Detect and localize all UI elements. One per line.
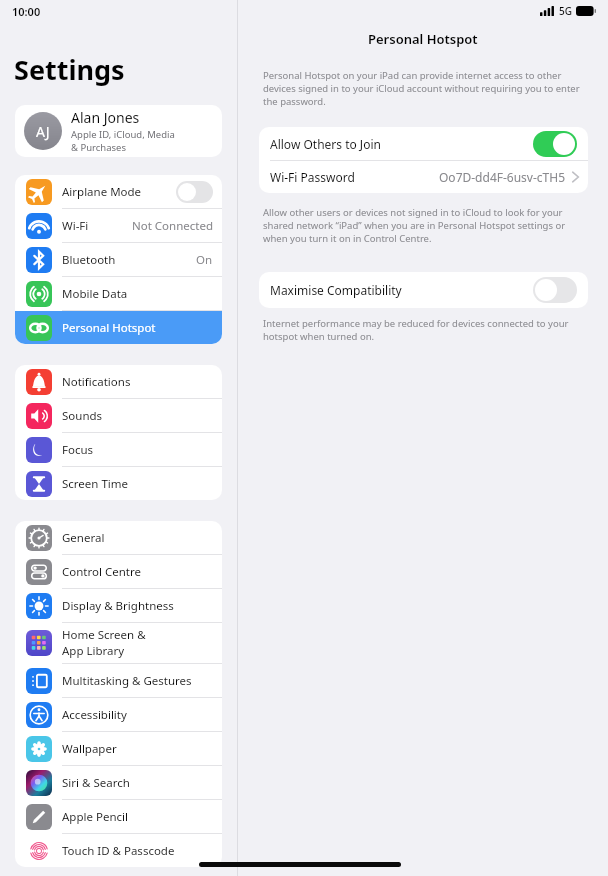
staticText: Sounds <box>62 408 103 424</box>
staticText: On <box>196 252 213 268</box>
staticText: Wi-Fi <box>62 218 89 234</box>
button[interactable]: Airplane Mode <box>15 175 222 208</box>
staticText: Apple Pencil <box>62 809 128 825</box>
button[interactable]: Screen Time <box>15 467 222 500</box>
button[interactable]: Toggle <box>533 131 577 157</box>
button[interactable]: Toggle <box>176 181 213 203</box>
staticText: General <box>62 530 105 546</box>
staticText: Focus <box>62 442 94 458</box>
staticText: Not Connected <box>132 218 213 234</box>
button[interactable]: Apple Pencil <box>15 800 222 833</box>
staticText: AJ <box>36 122 50 141</box>
staticText: Personal Hotspot <box>368 30 478 48</box>
staticText: App Library <box>62 643 125 659</box>
button[interactable]: Allow Others to Join <box>259 127 588 160</box>
button[interactable]: Control Centre <box>15 555 222 588</box>
button[interactable]: Accessibility <box>15 698 222 731</box>
staticText: Bluetooth <box>62 252 116 268</box>
staticText: Wi-Fi Password <box>270 169 439 185</box>
button[interactable]: Display & Brightness <box>15 589 222 622</box>
staticText: Accessibility <box>62 707 127 723</box>
staticText: Touch ID & Passcode <box>62 843 175 859</box>
staticText: Maximise Compatibility <box>270 282 533 298</box>
button[interactable]: Home Screen & <box>15 623 222 663</box>
staticText: Home Screen & <box>62 627 146 643</box>
staticText: Screen Time <box>62 476 129 492</box>
button[interactable]: Siri & Search <box>15 766 222 799</box>
staticText: Allow Others to Join <box>270 136 533 152</box>
button[interactable]: Touch ID & Passcode <box>15 834 222 867</box>
staticText: Personal Hotspot on your iPad can provid… <box>263 69 582 108</box>
staticText: Settings <box>14 51 125 88</box>
button[interactable]: Notifications <box>15 365 222 398</box>
staticText: Control Centre <box>62 564 141 580</box>
staticText: Notifications <box>62 374 131 390</box>
staticText: 5G <box>559 4 572 18</box>
button[interactable]: General <box>15 521 222 554</box>
staticText: 10:00 <box>12 4 41 19</box>
staticText: Apple ID, iCloud, Media <box>71 128 175 141</box>
staticText: Display & Brightness <box>62 598 174 614</box>
staticText: Wallpaper <box>62 741 117 757</box>
staticText: Oo7D-dd4F-6usv-cTH5 <box>439 169 566 185</box>
button[interactable]: Multitasking & Gestures <box>15 664 222 697</box>
button[interactable]: Maximise Compatibility <box>259 272 588 308</box>
staticText: Allow other users or devices not signed … <box>263 206 582 245</box>
staticText: Siri & Search <box>62 775 130 791</box>
button[interactable]: Personal Hotspot <box>15 311 222 344</box>
button[interactable]: Wi-Fi Password <box>259 161 588 193</box>
staticText: Multitasking & Gestures <box>62 673 192 689</box>
staticText: Mobile Data <box>62 286 128 302</box>
button[interactable]: Mobile Data <box>15 277 222 310</box>
staticText: Personal Hotspot <box>62 320 156 336</box>
staticText: Alan Jones <box>71 108 140 127</box>
button[interactable]: Bluetooth <box>15 243 222 276</box>
staticText: Airplane Mode <box>62 184 142 200</box>
button[interactable]: Toggle <box>533 277 577 303</box>
staticText: Internet performance may be reduced for … <box>263 317 582 343</box>
button[interactable]: Sounds <box>15 399 222 432</box>
button[interactable]: Wi-Fi <box>15 209 222 242</box>
button[interactable]: AJ <box>15 105 222 157</box>
button[interactable]: Wallpaper <box>15 732 222 765</box>
staticText: & Purchases <box>71 141 126 154</box>
button[interactable]: Focus <box>15 433 222 466</box>
